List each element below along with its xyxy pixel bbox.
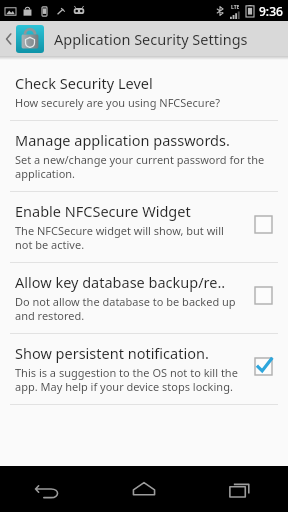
button[interactable]: Show persistent notification. xyxy=(248,351,278,381)
button[interactable]: Show persistent notification. xyxy=(0,334,288,404)
staticText: Set a new/change your current password f… xyxy=(15,152,274,181)
staticText: Do not allow the database to be backed u… xyxy=(15,294,238,323)
button[interactable]: Back xyxy=(0,466,96,512)
staticText: 9:36 xyxy=(259,3,283,19)
staticText: How securely are you using NFCSecure? xyxy=(15,95,220,110)
staticText: This is a suggestion to the OS not to ki… xyxy=(15,365,238,394)
staticText: Enable NFCSecure Widget xyxy=(15,201,191,221)
button[interactable]: Allow key database backup/re.. xyxy=(248,280,278,310)
button[interactable]: Allow key database backup/re.. xyxy=(0,263,288,333)
button[interactable]: Navigate up xyxy=(0,21,288,56)
button[interactable]: Recent apps xyxy=(192,466,288,512)
staticText: Allow key database backup/re.. xyxy=(15,272,226,292)
other: Navigate up xyxy=(4,32,13,46)
button[interactable]: Home xyxy=(96,466,192,512)
button[interactable]: Manage application passwords. xyxy=(0,121,288,191)
staticText: Check Security Level xyxy=(15,73,153,93)
staticText: Manage application passwords. xyxy=(15,130,230,150)
staticText: LTE xyxy=(231,4,240,11)
staticText: The NFCSecure widget will show, but will… xyxy=(15,223,238,252)
button[interactable]: Enable NFCSecure Widget xyxy=(0,192,288,262)
staticText: Application Security Settings xyxy=(54,29,248,49)
button[interactable]: Enable NFCSecure Widget xyxy=(248,209,278,239)
button[interactable]: Check Security Level xyxy=(0,64,288,120)
staticText: Show persistent notification. xyxy=(15,343,209,363)
